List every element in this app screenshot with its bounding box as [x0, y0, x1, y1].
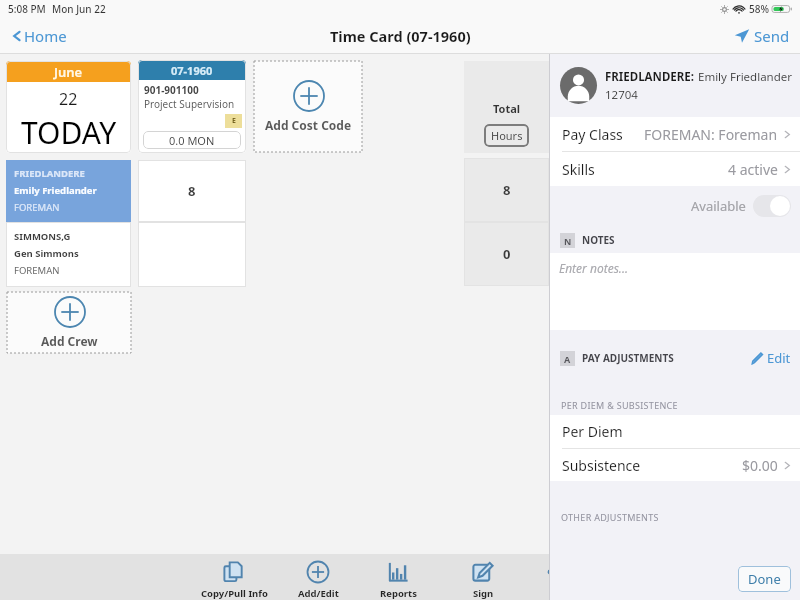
button[interactable]: June	[6, 61, 131, 153]
button[interactable]: 8	[138, 160, 246, 222]
staticText: Add Cost Code	[265, 117, 352, 133]
staticText: N	[564, 235, 572, 247]
staticText: Done	[748, 570, 781, 588]
staticText: PAY ADJUSTMENTS	[582, 351, 674, 365]
staticText: FOREMAN: Foreman	[644, 125, 778, 144]
staticText: TODAY	[21, 112, 117, 153]
staticText: OTHER ADJUSTMENTS	[561, 511, 659, 523]
button[interactable]: Copy/Pull Info	[190, 554, 278, 600]
staticText: Emily Friedlander	[14, 184, 97, 197]
staticText: 58%	[749, 2, 769, 16]
staticText: Add/Edit	[298, 587, 339, 600]
button[interactable]: Send	[734, 26, 790, 46]
button[interactable]: Done	[738, 566, 791, 592]
staticText: Pay Class	[562, 125, 623, 144]
button[interactable]: Reports	[358, 554, 438, 600]
button[interactable]	[138, 222, 246, 287]
staticText: Time Card (07-1960)	[330, 26, 471, 46]
button[interactable]: FRIEDLANDERE	[6, 160, 131, 222]
staticText: NOTES	[582, 233, 615, 247]
staticText: FOREMAN	[14, 264, 60, 277]
staticText: Subsistence	[562, 456, 641, 475]
staticText: 22	[59, 88, 78, 110]
staticText: Project Supervision	[144, 97, 235, 111]
staticText: Skills	[562, 160, 595, 179]
staticText: 4 active	[728, 160, 778, 179]
button[interactable]: Add/Edit	[278, 554, 358, 600]
staticText: Enter notes...	[559, 260, 629, 276]
staticText: FRIEDLANDERE:	[605, 69, 694, 85]
staticText: A	[564, 353, 571, 365]
staticText: Hours	[491, 128, 523, 143]
staticText: $0.00	[742, 456, 778, 475]
button[interactable]: Per Diem	[562, 415, 792, 448]
staticText: FRIEDLANDERE	[14, 167, 85, 180]
staticText: Available	[691, 197, 746, 215]
staticText: Per Diem	[562, 422, 623, 441]
button[interactable]: Available toggle	[753, 195, 791, 217]
staticText: Reports	[380, 587, 417, 600]
staticText: PER DIEM & SUBSISTENCE	[561, 399, 678, 411]
staticText: 8	[188, 182, 196, 200]
staticText: 12704	[605, 87, 638, 103]
staticText: SIMMONS,G	[14, 230, 71, 243]
button[interactable]: Add Cost Code	[254, 61, 362, 152]
staticText: E	[232, 116, 236, 126]
staticText: Emily Friedlander	[698, 69, 793, 85]
button[interactable]: 07-1960	[138, 60, 246, 153]
staticText: Home	[24, 26, 67, 46]
button[interactable]: Home	[10, 26, 67, 46]
staticText: Add Crew	[41, 333, 98, 349]
button[interactable]: Skills	[562, 152, 792, 186]
staticText: June	[54, 63, 83, 81]
button[interactable]: Add Crew	[7, 292, 131, 353]
staticText: Send	[754, 26, 790, 46]
staticText: 0.0 MON	[169, 133, 215, 148]
button[interactable]: Edit	[751, 349, 791, 367]
staticText: 5:08 PM	[8, 2, 46, 16]
staticText: 8	[503, 181, 511, 199]
staticText: 07-1960	[171, 63, 213, 78]
button[interactable]: Subsistence	[562, 449, 792, 481]
button[interactable]: Enter notes...	[559, 260, 800, 330]
staticText: Mon Jun 22	[52, 2, 106, 16]
staticText: Gen Simmons	[14, 247, 79, 260]
staticText: Total	[493, 101, 521, 116]
staticText: 0	[503, 245, 511, 263]
staticText: Copy/Pull Info	[201, 587, 268, 600]
staticText: FOREMAN	[14, 201, 60, 214]
staticText: Edit	[767, 349, 791, 367]
button[interactable]: Pay Class	[562, 117, 792, 151]
staticText: 901-901100	[144, 83, 199, 97]
button[interactable]: SIMMONS,G	[6, 222, 131, 287]
button[interactable]: Sign	[438, 554, 528, 600]
staticText: Sign	[473, 587, 494, 600]
